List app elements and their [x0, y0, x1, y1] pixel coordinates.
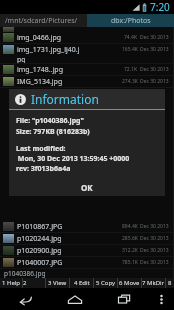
staticText: Dec 30 2013	[140, 259, 169, 266]
staticText: 74.4K	[124, 34, 138, 41]
staticText: IMG_5134.jpg	[17, 77, 122, 87]
button[interactable]: 8	[166, 278, 174, 288]
button[interactable]: 7 MkDir	[142, 278, 165, 288]
staticText: p1020900.jpg	[17, 246, 122, 256]
staticText: 165.4K	[122, 46, 138, 53]
staticText: OK	[81, 182, 93, 193]
staticText: P1040007.JPG	[17, 258, 122, 268]
staticText: 785.1K	[122, 259, 138, 266]
staticText: Last modified:	[16, 144, 66, 154]
button[interactable]: 2 Rename	[23, 278, 45, 288]
staticText: 5 Copy	[96, 279, 116, 287]
staticText: 8	[168, 279, 172, 287]
staticText: 7:20	[150, 0, 170, 14]
button[interactable]: OK	[9, 178, 165, 196]
button[interactable]: /mnt/sdcard/Pictures/	[0, 14, 87, 27]
staticText: 6 Move	[119, 279, 140, 287]
button[interactable]: 4 Edit	[70, 278, 93, 288]
button[interactable]: 3 View	[46, 278, 69, 288]
staticText: 2 Rename	[23, 279, 45, 287]
staticText: p1040386.jpg	[4, 269, 46, 278]
staticText: p1020244.jpg	[17, 234, 122, 244]
button[interactable]: IMG_5134.jpg	[0, 76, 174, 87]
staticText: 312.2K	[122, 247, 138, 254]
staticText: 894.4K	[122, 223, 138, 230]
staticText: img_0466.jpg	[17, 33, 124, 43]
button[interactable]: P1010867.JPG	[0, 221, 174, 232]
staticText: /mnt/sdcard/Pictures/	[5, 16, 78, 26]
button[interactable]: Recent apps	[99, 288, 148, 310]
staticText: 274.3K	[122, 78, 138, 85]
staticText: pg	[17, 55, 26, 63]
button[interactable]: 6 Move	[118, 278, 141, 288]
staticText: Mon, 30 Dec 2013 13:59:45 +0000	[16, 154, 130, 164]
staticText: P1010867.JPG	[17, 222, 122, 232]
staticText: Information	[31, 91, 99, 107]
staticText: 7 MkDir	[142, 279, 165, 287]
staticText: img_1731.jpg_lj40.j	[17, 45, 122, 55]
staticText: rev: 3f013b6a4a	[16, 164, 71, 174]
staticText: Dec 30 2013	[140, 223, 169, 230]
staticText: Dec 30 2013	[140, 46, 169, 53]
button[interactable]: img_1748..jpg	[0, 64, 174, 75]
staticText: Size: 797KB (816283b)	[16, 127, 90, 137]
staticText: 3 View	[48, 279, 67, 287]
button[interactable]: Back	[0, 288, 50, 310]
button[interactable]: img_1731.jpg_lj40.j	[0, 44, 174, 55]
staticText: Dec 30 2013	[140, 78, 169, 85]
staticText: 285.6K	[122, 235, 138, 242]
button[interactable]: img_0466.jpg	[0, 32, 174, 43]
button[interactable]: p1040386.jpg	[0, 269, 174, 278]
button[interactable]: Home	[50, 288, 99, 310]
staticText: dbx:/Photos	[111, 16, 151, 26]
staticText: Dec 30 2013	[140, 34, 169, 41]
button[interactable]: dbx:/Photos	[87, 14, 174, 27]
staticText: 72.1K	[124, 66, 138, 73]
button[interactable]: More options	[148, 288, 174, 310]
button[interactable]: 1 Help	[0, 278, 22, 288]
staticText: File: "p1040386.jpg"	[16, 116, 84, 126]
staticText: Dec 30 2013	[140, 247, 169, 254]
staticText: 4 Edit	[74, 279, 90, 287]
staticText: 1 Help	[2, 279, 21, 287]
button[interactable]: 5 Copy	[94, 278, 117, 288]
staticText: Dec 30 2013	[140, 235, 169, 242]
staticText: Dec 30 2013	[140, 66, 169, 73]
button[interactable]: P1040007.JPG	[0, 257, 174, 268]
button[interactable]: p1020900.jpg	[0, 245, 174, 256]
button[interactable]: p1020244.jpg	[0, 233, 174, 244]
staticText: img_1748..jpg	[17, 65, 124, 75]
